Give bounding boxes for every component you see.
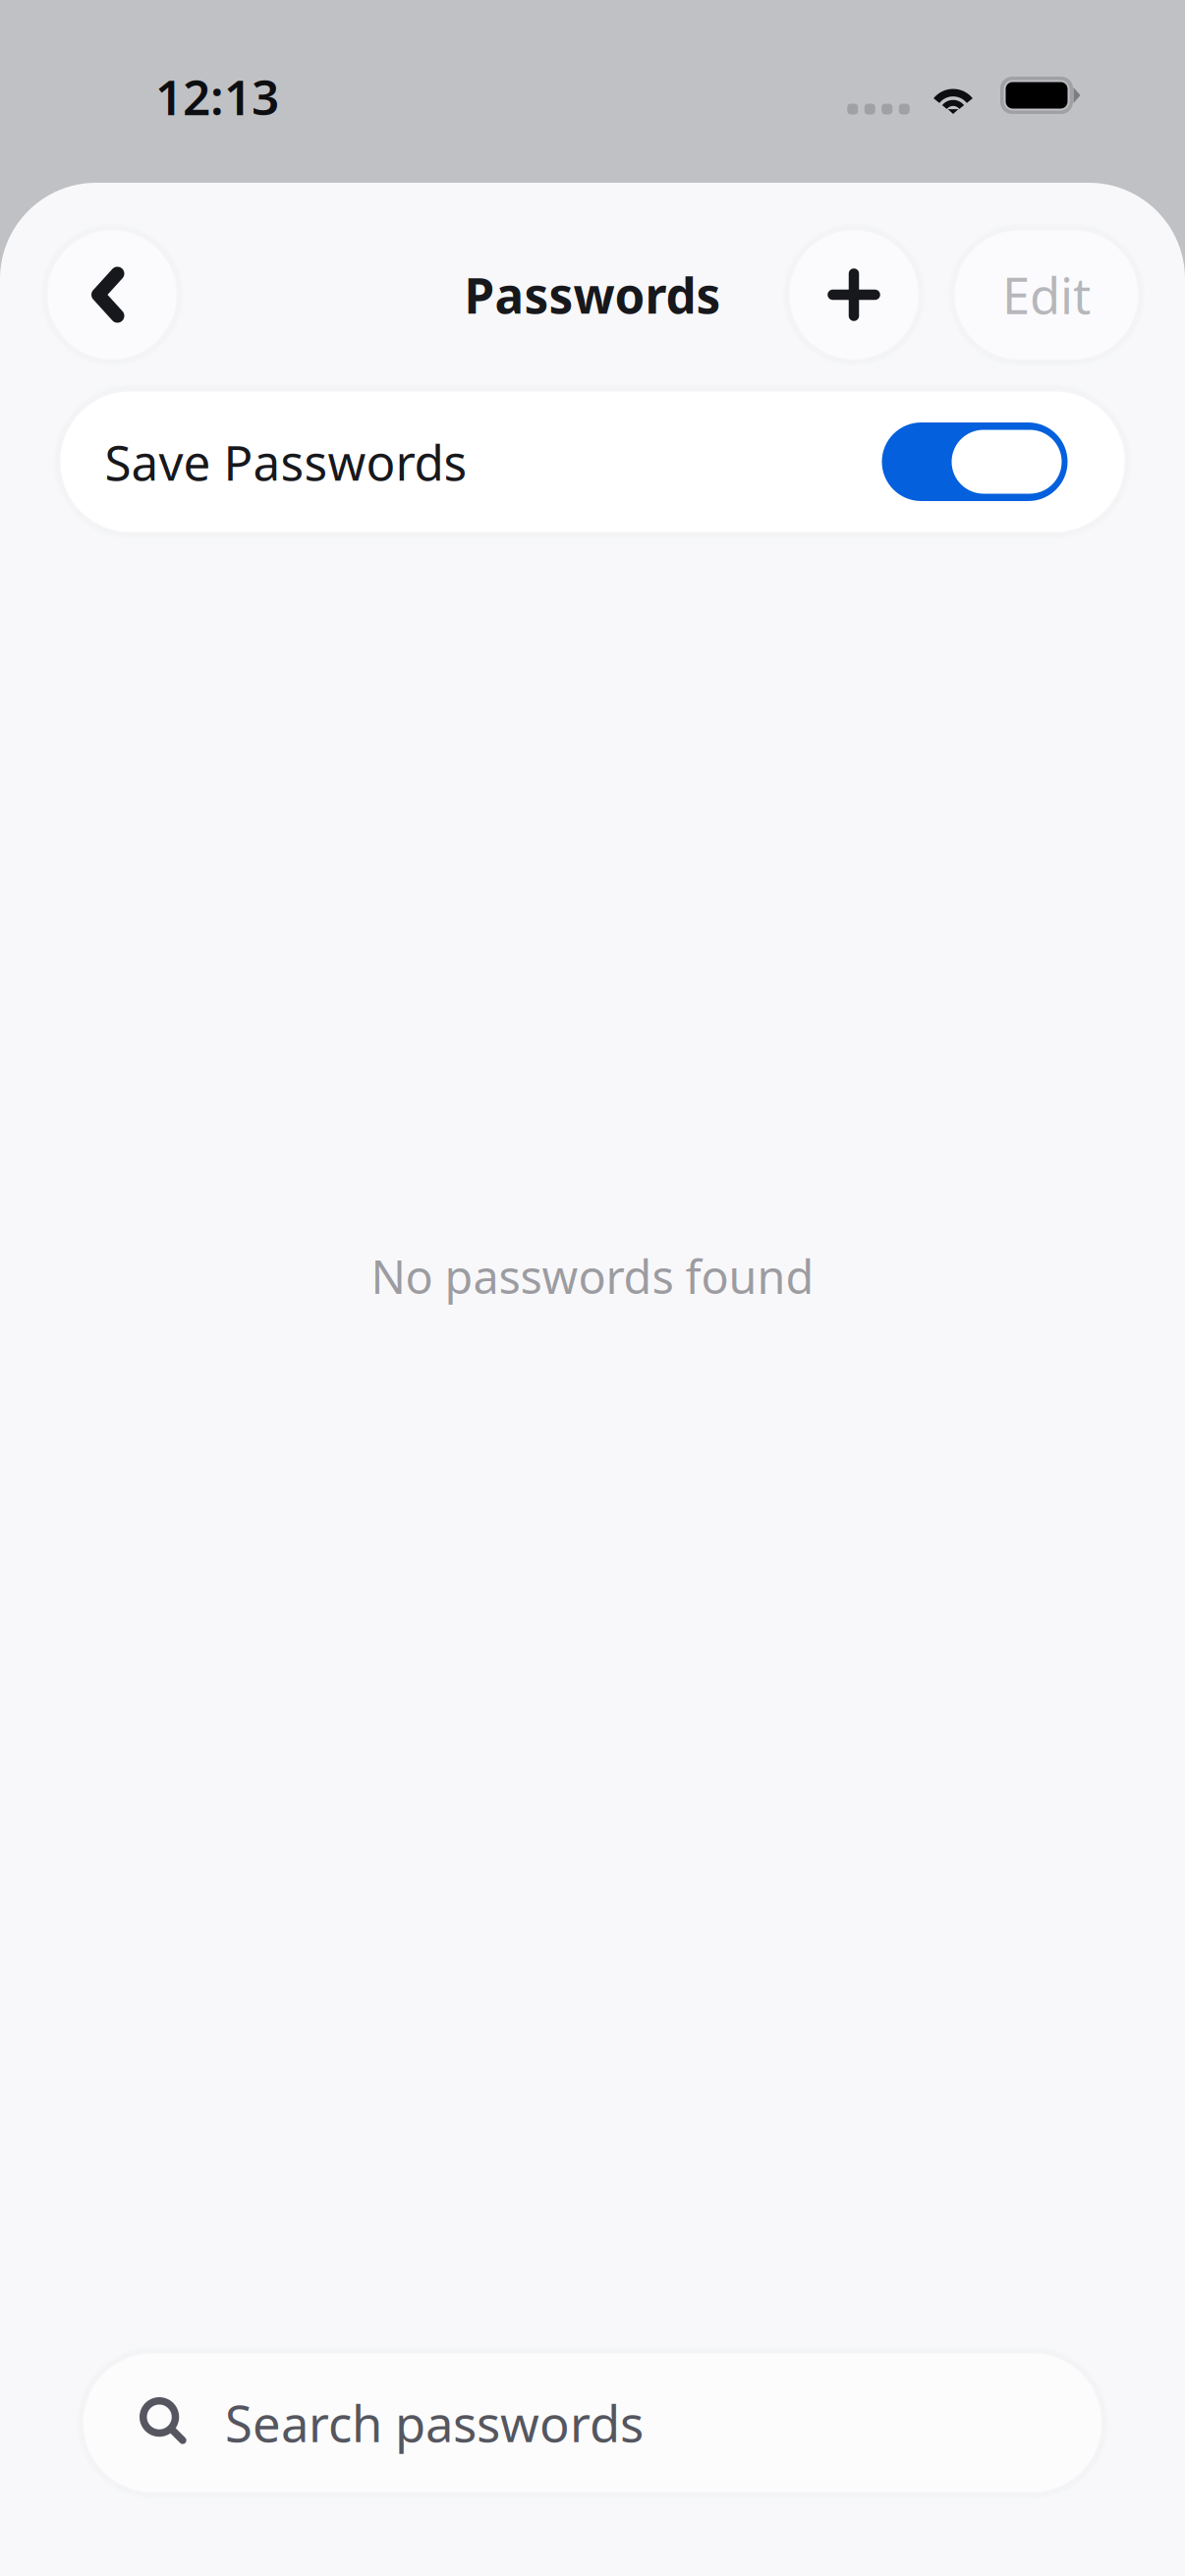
staticText: Edit — [1002, 262, 1091, 328]
staticText: Passwords — [464, 263, 721, 327]
staticText: No passwords found — [371, 1246, 814, 1307]
staticText: Save Passwords — [105, 430, 467, 494]
button[interactable]: Back — [48, 230, 176, 359]
staticText: 12:13 — [155, 64, 279, 128]
staticText: Search passwords — [225, 2390, 644, 2456]
button[interactable]: Add password — [790, 230, 918, 359]
button[interactable]: Edit — [941, 217, 1152, 373]
button[interactable]: Save Passwords — [47, 378, 1138, 546]
button[interactable]: Search passwords — [70, 2340, 1115, 2506]
